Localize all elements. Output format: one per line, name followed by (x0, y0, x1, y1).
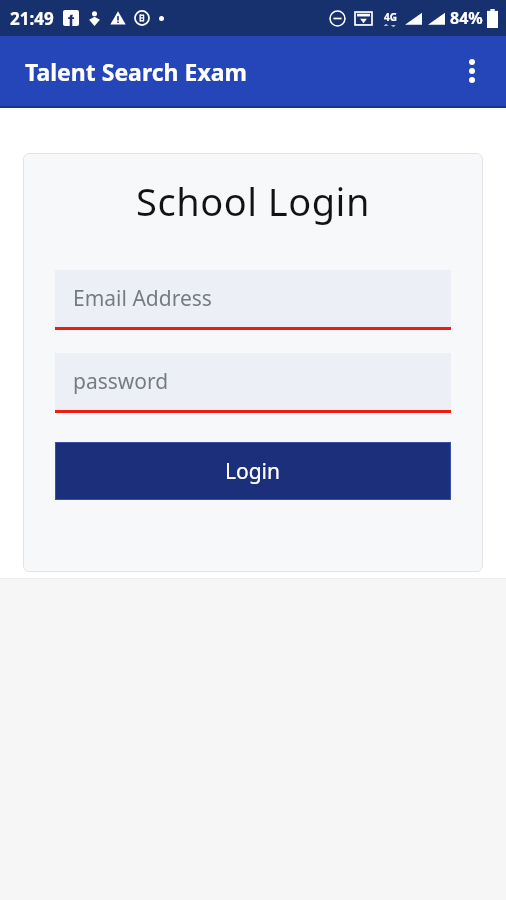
button[interactable]: More options (448, 47, 496, 95)
staticText: 21:49 (10, 7, 54, 30)
staticText: password (73, 367, 169, 396)
staticText: 84% (450, 7, 483, 29)
button[interactable]: Login (55, 442, 451, 500)
staticText: School Login (23, 175, 483, 227)
staticText: Email Address (73, 284, 212, 313)
staticText: Login (225, 457, 281, 486)
staticText: 4G (384, 10, 397, 24)
button[interactable]: Email Address (55, 270, 451, 330)
button[interactable]: password (55, 353, 451, 413)
staticText: Talent Search Exam (25, 56, 247, 87)
